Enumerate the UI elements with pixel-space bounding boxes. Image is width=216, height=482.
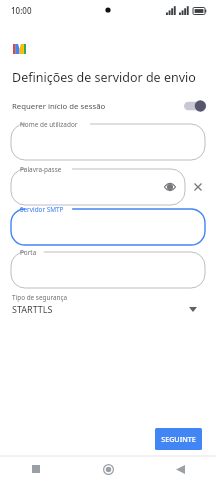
button[interactable]: Limpar [190, 179, 206, 195]
button[interactable]: Tipo de segurança [0, 293, 216, 323]
button[interactable]: Nome de utilizador [11, 124, 205, 160]
button[interactable]: SEGUINTE [155, 428, 202, 450]
staticText: 10:00 [11, 5, 32, 16]
staticText: Nome de utilizador [20, 120, 78, 129]
staticText: Servidor SMTP [20, 205, 64, 214]
button[interactable]: Servidor SMTP [11, 209, 205, 245]
staticText: Tipo de segurança [12, 293, 68, 302]
button[interactable]: Voltar [144, 456, 216, 482]
button[interactable]: Palavra-passe [11, 169, 185, 205]
staticText: Requerer início de sessão [12, 101, 106, 112]
staticText: SEGUINTE [161, 434, 196, 444]
staticText: Porta [20, 248, 37, 257]
button[interactable]: Porta [11, 252, 205, 288]
button[interactable]: Início [72, 456, 144, 482]
staticText: STARTTLS [12, 303, 53, 315]
button[interactable]: Requerer início de sessão [0, 96, 216, 116]
button[interactable]: Mostrar palavra-passe [163, 180, 177, 194]
staticText: Palavra-passe [20, 165, 62, 174]
button[interactable]: Recentes [0, 456, 72, 482]
staticText: Definições de servidor de envio [12, 69, 196, 86]
